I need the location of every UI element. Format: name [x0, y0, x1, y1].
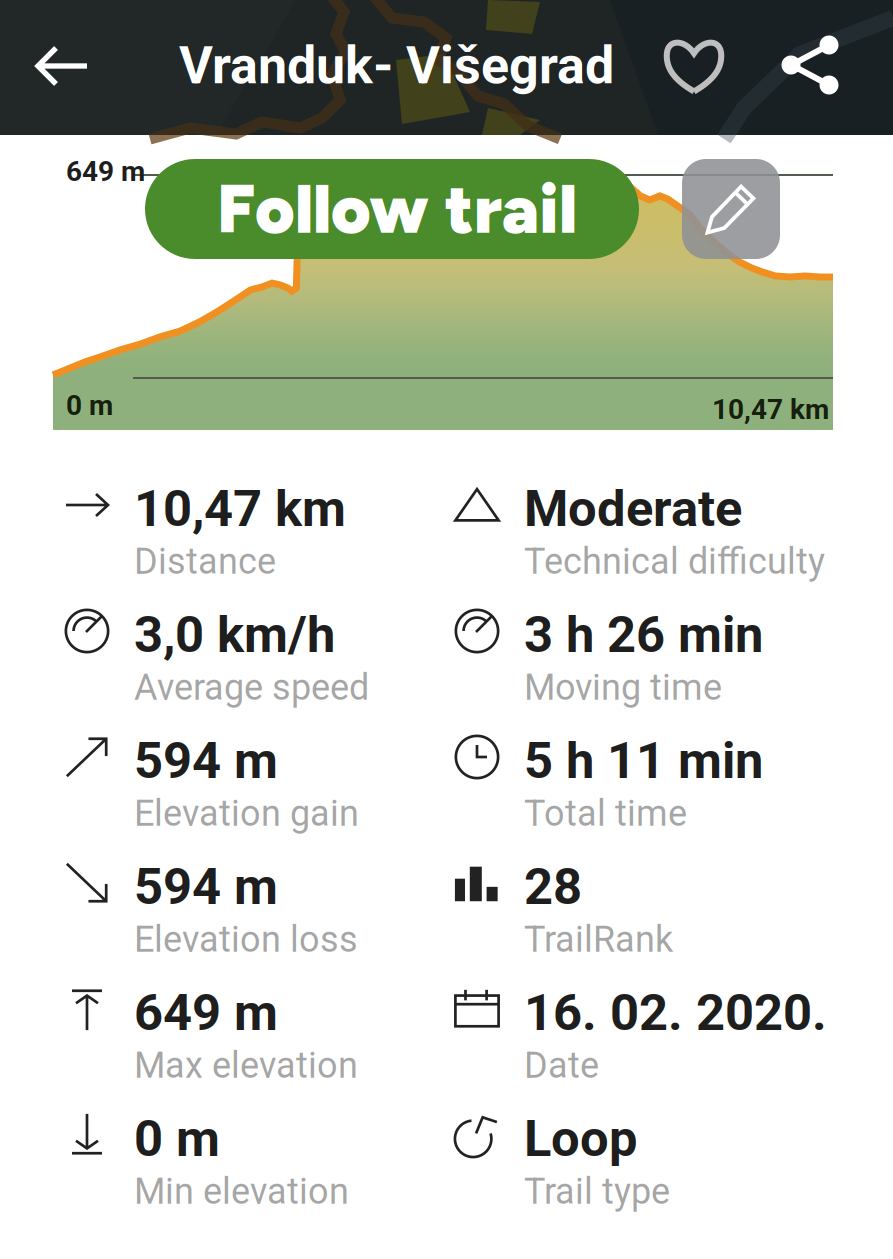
staticText: 10,47 km [712, 393, 829, 426]
staticText: Vranduk- Višegrad [179, 35, 614, 96]
staticText: Technical difficulty [524, 540, 825, 583]
staticText: Moving time [524, 666, 722, 709]
staticText: Elevation gain [134, 792, 359, 835]
staticText: 10,47 km [134, 479, 346, 538]
staticText: Average speed [134, 666, 369, 709]
staticText: Distance [134, 540, 276, 583]
staticText: Min elevation [134, 1170, 349, 1213]
staticText: 594 m [134, 857, 278, 916]
staticText: Moderate [524, 479, 742, 538]
button[interactable]: Follow trail [145, 159, 639, 259]
staticText: Loop [524, 1109, 638, 1168]
staticText: Trail type [524, 1170, 670, 1213]
staticText: 16. 02. 2020. [524, 983, 827, 1042]
staticText: 3 h 26 min [524, 605, 763, 664]
staticText: 3,0 km/h [134, 605, 335, 664]
staticText: 594 m [134, 731, 278, 790]
staticText: Max elevation [134, 1044, 358, 1087]
staticText: 649 m [134, 983, 278, 1042]
staticText: Elevation loss [134, 918, 358, 961]
button[interactable]: Back [14, 18, 110, 114]
staticText: 5 h 11 min [524, 731, 763, 790]
staticText: TrailRank [524, 918, 673, 961]
button[interactable]: Edit [682, 159, 780, 259]
staticText: 649 m [66, 155, 145, 188]
staticText: 0 m [66, 389, 113, 422]
staticText: Total time [524, 792, 687, 835]
staticText: Date [524, 1044, 599, 1087]
button[interactable]: Favorite [646, 18, 742, 114]
staticText: 0 m [134, 1109, 220, 1168]
button[interactable]: Share [762, 17, 858, 113]
staticText: Follow trail [217, 168, 577, 250]
staticText: 28 [524, 857, 582, 916]
